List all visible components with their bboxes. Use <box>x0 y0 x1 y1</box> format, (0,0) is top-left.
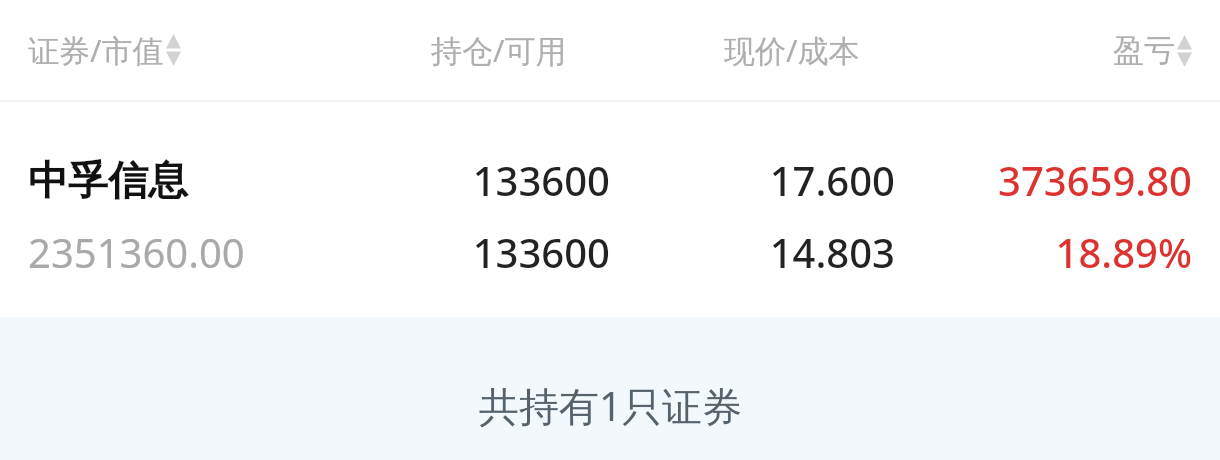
button[interactable]: 持仓/可用 <box>431 29 567 71</box>
staticText: 133600 <box>370 153 610 207</box>
staticText: 持仓/可用 <box>431 29 567 71</box>
staticText: 14.803 <box>655 225 895 279</box>
staticText: 133600 <box>370 225 610 279</box>
staticText: 373659.80 <box>852 153 1192 207</box>
button[interactable]: 现价/成本 <box>724 29 860 71</box>
button[interactable]: 证券/市值 <box>28 29 181 71</box>
staticText: 中孚信息 <box>28 155 188 205</box>
button[interactable]: 共持有1只证券 <box>0 317 1220 460</box>
staticText: 17.600 <box>655 153 895 207</box>
staticText: 2351360.00 <box>28 225 245 279</box>
staticText: 18.89% <box>852 225 1192 279</box>
staticText: 现价/成本 <box>724 29 860 71</box>
staticText: 共持有1只证券 <box>479 378 742 433</box>
button[interactable]: 中孚信息 <box>0 102 1220 317</box>
other: Sort by profit and loss <box>1177 35 1192 67</box>
staticText: 盈亏 <box>1113 31 1175 70</box>
staticText: 证券/市值 <box>28 29 164 71</box>
button[interactable]: 盈亏 <box>1113 31 1192 70</box>
other: Sort by market value <box>166 34 181 66</box>
